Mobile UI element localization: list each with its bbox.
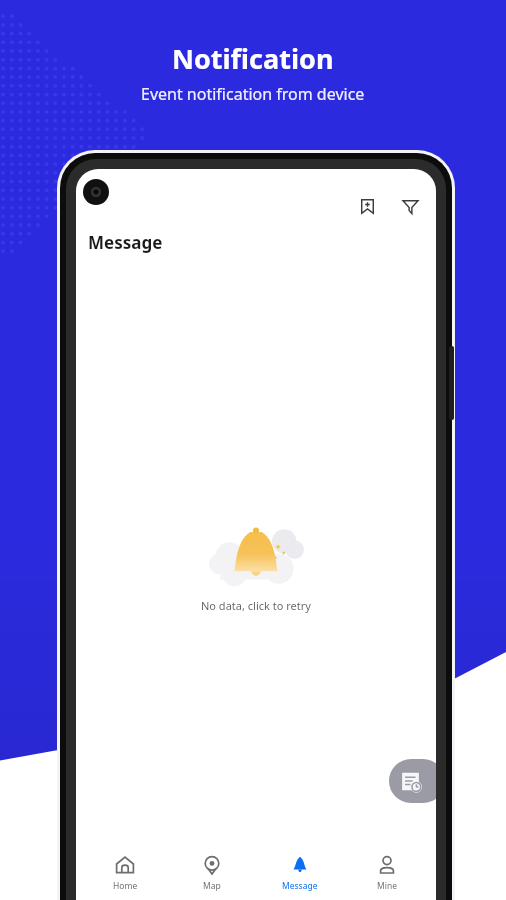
button[interactable]: No data, click to retry [195, 595, 317, 616]
staticText: Home [113, 880, 138, 892]
button[interactable]: Home [86, 849, 164, 898]
button[interactable]: Mine [348, 849, 426, 898]
staticText: Message [88, 231, 163, 254]
staticText: Event notification from device [141, 83, 365, 105]
button[interactable]: Filter [393, 189, 427, 223]
staticText: Notification [172, 40, 334, 77]
button[interactable]: Add tag [350, 189, 384, 223]
staticText: Message [282, 880, 318, 892]
button[interactable]: Message [261, 849, 339, 898]
button[interactable]: History records [389, 759, 436, 803]
staticText: Map [203, 880, 221, 892]
staticText: No data, click to retry [201, 598, 311, 613]
button[interactable]: Map [173, 849, 251, 898]
staticText: Mine [377, 880, 397, 892]
